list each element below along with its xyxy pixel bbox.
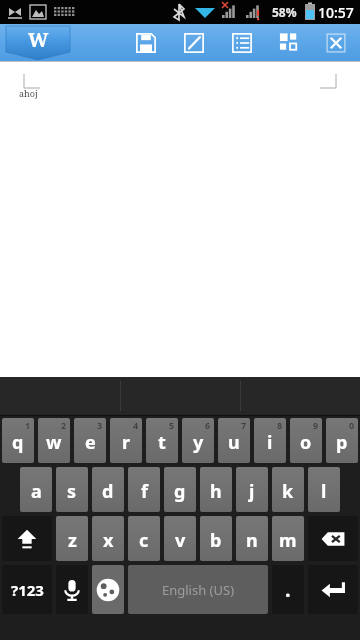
button[interactable]: Word document (6, 24, 70, 61)
staticText: 9 (313, 419, 319, 431)
button[interactable]: Backspace (308, 516, 358, 561)
staticText: c (139, 528, 149, 553)
button[interactable]: q (2, 418, 34, 463)
staticText: b (210, 528, 222, 553)
button[interactable]: t (146, 418, 178, 463)
staticText: o (300, 430, 312, 455)
button[interactable]: w (38, 418, 70, 463)
button[interactable]: p (326, 418, 358, 463)
staticText: d (102, 479, 114, 504)
button[interactable]: k (272, 467, 304, 512)
staticText: 3 (97, 419, 103, 431)
button[interactable]: Enter (308, 565, 358, 614)
button[interactable]: b (200, 516, 232, 561)
button[interactable]: ?123 (2, 565, 52, 614)
staticText: z (68, 528, 77, 553)
staticText: 8 (277, 419, 283, 431)
button[interactable]: Voice input (56, 565, 88, 614)
staticText: l (321, 479, 327, 504)
button[interactable]: x (92, 516, 124, 561)
staticText: w (46, 430, 62, 455)
staticText: a (31, 479, 42, 504)
staticText: n (246, 528, 258, 553)
button[interactable]: o (290, 418, 322, 463)
staticText: i (267, 430, 273, 455)
staticText: . (285, 576, 291, 603)
button[interactable]: l (308, 467, 340, 512)
staticText: 7 (241, 419, 247, 431)
staticText: ?123 (11, 580, 44, 600)
staticText: p (336, 430, 348, 455)
button[interactable]: c (128, 516, 160, 561)
button[interactable]: s (56, 467, 88, 512)
button[interactable]: j (236, 467, 268, 512)
button[interactable]: . (272, 565, 304, 614)
staticText: 10:57 (318, 3, 354, 22)
staticText: e (85, 430, 96, 455)
button[interactable]: h (200, 467, 232, 512)
staticText: 6 (205, 419, 211, 431)
staticText: m (279, 528, 297, 553)
button[interactable]: m (272, 516, 304, 561)
button[interactable]: Change language (92, 565, 124, 614)
staticText: W (28, 27, 49, 53)
button[interactable]: y (182, 418, 214, 463)
button[interactable]: Save (126, 26, 166, 60)
staticText: v (175, 528, 186, 553)
button[interactable]: f (128, 467, 160, 512)
button[interactable]: English (US) (128, 565, 268, 614)
button[interactable]: Edit (174, 26, 214, 60)
staticText: 58% (272, 4, 297, 20)
staticText: k (282, 479, 294, 504)
staticText: x (103, 528, 114, 553)
staticText: 0 (349, 419, 355, 431)
button[interactable]: g (164, 467, 196, 512)
staticText: f (141, 479, 148, 504)
button[interactable]: n (236, 516, 268, 561)
button[interactable]: Apps (270, 26, 310, 60)
staticText: u (228, 430, 240, 455)
button[interactable]: u (218, 418, 250, 463)
button[interactable]: Shift (2, 516, 52, 561)
button[interactable]: Close (316, 26, 356, 60)
button[interactable]: i (254, 418, 286, 463)
button[interactable]: z (56, 516, 88, 561)
button[interactable]: e (74, 418, 106, 463)
staticText: g (174, 479, 186, 504)
staticText: j (249, 479, 255, 504)
staticText: r (122, 430, 131, 455)
button[interactable]: v (164, 516, 196, 561)
staticText: 5 (169, 419, 175, 431)
button[interactable]: r (110, 418, 142, 463)
staticText: q (12, 430, 24, 455)
staticText: 2 (61, 419, 67, 431)
button[interactable]: d (92, 467, 124, 512)
button[interactable]: Outline (222, 26, 262, 60)
staticText: t (158, 430, 166, 455)
staticText: 4 (133, 419, 139, 431)
staticText: English (US) (162, 581, 235, 599)
staticText: s (67, 479, 77, 504)
button[interactable]: a (20, 467, 52, 512)
staticText: h (210, 479, 222, 504)
staticText: ahoj (19, 87, 38, 99)
staticText: 1 (25, 419, 31, 431)
staticText: y (193, 430, 204, 455)
